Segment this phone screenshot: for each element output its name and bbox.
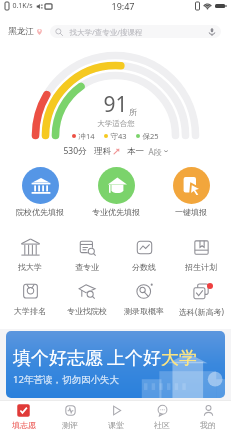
staticText: 选科(新高考) — [179, 306, 224, 317]
staticText: 理科 — [94, 146, 111, 157]
button[interactable]: 我的 — [185, 401, 231, 430]
staticText: 所 — [129, 107, 137, 117]
staticText: 社区 — [154, 420, 170, 430]
staticText: 查专业 — [75, 262, 99, 272]
staticText: 一键填报 — [175, 207, 207, 217]
button[interactable]: 选科(新高考) — [174, 282, 228, 317]
staticText: 测评 — [62, 420, 78, 430]
staticText: 大学 — [161, 347, 197, 370]
staticText: 黑龙江 — [8, 26, 34, 37]
staticText: 保25 — [142, 131, 159, 141]
button[interactable]: 专业找院校 — [60, 282, 114, 316]
button[interactable]: 找大学/查专业/搜课程 — [50, 25, 221, 38]
staticText: 找大学/查专业/搜课程 — [69, 27, 143, 37]
button[interactable]: 一键填报 — [156, 167, 226, 217]
button[interactable]: 填个好志愿 — [6, 331, 225, 398]
button[interactable]: 课堂 — [93, 401, 139, 430]
button[interactable]: 黑龙江 — [8, 26, 43, 37]
button[interactable]: 院校优先填报 — [5, 167, 75, 217]
button[interactable]: 专业优先填报 — [81, 167, 151, 217]
staticText: 招生计划 — [185, 262, 217, 272]
staticText: 本一 — [127, 146, 144, 157]
button[interactable]: 大学排名 — [3, 282, 57, 316]
staticText: 91 — [103, 90, 128, 119]
staticText: 大学排名 — [14, 306, 46, 316]
staticText: 测录取概率 — [124, 306, 164, 316]
staticText: 19:47 — [111, 0, 135, 12]
staticText: 课堂 — [108, 420, 124, 430]
staticText: 守43 — [110, 131, 127, 141]
staticText: 0.1K/s — [12, 1, 33, 11]
staticText: 我的 — [200, 420, 216, 430]
staticText: 冲14 — [78, 131, 95, 141]
button[interactable]: 530分 — [63, 145, 169, 157]
staticText: 找大学 — [18, 262, 42, 272]
button[interactable]: 查专业 — [60, 238, 114, 272]
staticText: 填志愿 — [12, 420, 36, 430]
staticText: 填个好志愿 — [13, 347, 103, 370]
button[interactable]: 招生计划 — [174, 238, 228, 272]
button[interactable]: 分数线 — [117, 238, 171, 272]
staticText: 大学适合您 — [97, 119, 135, 128]
staticText: 院校优先填报 — [16, 207, 64, 217]
button[interactable]: 社区 — [139, 401, 185, 430]
staticText: 上个好 — [107, 347, 161, 370]
staticText: A段 — [148, 146, 162, 157]
button[interactable]: 测录取概率 — [117, 282, 171, 316]
staticText: 专业找院校 — [67, 306, 107, 316]
button[interactable]: Voice search — [207, 27, 217, 37]
button[interactable]: 测评 — [47, 401, 93, 430]
button[interactable]: 找大学 — [3, 238, 57, 272]
staticText: 530分 — [63, 145, 87, 157]
button[interactable]: 填志愿 — [0, 401, 47, 430]
staticText: 专业优先填报 — [92, 207, 140, 217]
staticText: 12年苦读，切勿因小失大 — [13, 373, 119, 386]
staticText: 分数线 — [132, 262, 156, 272]
